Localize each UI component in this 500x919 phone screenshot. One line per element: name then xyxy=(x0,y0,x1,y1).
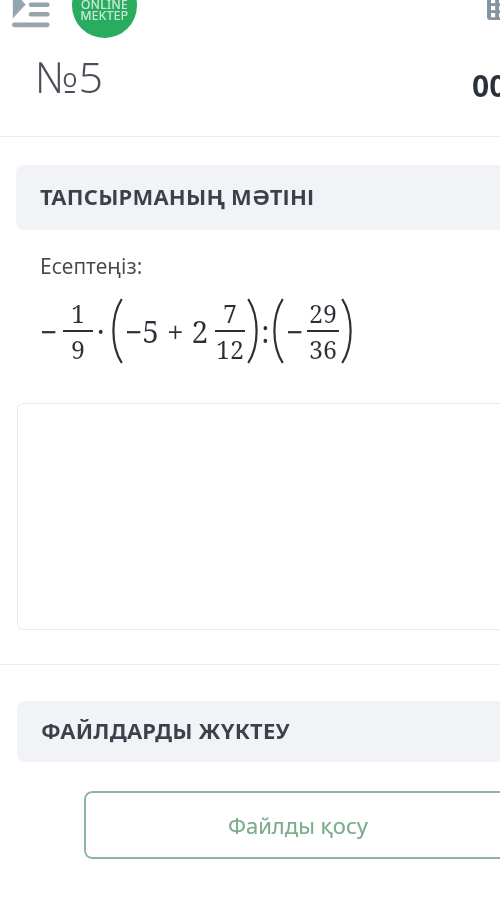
staticText: ФАЙЛДАРДЫ ЖҮКТЕУ xyxy=(41,715,290,745)
staticText: ONLINE xyxy=(72,0,137,12)
staticText: : xyxy=(261,311,270,352)
staticText: MEKTEP xyxy=(72,7,137,23)
staticText: Файлды қосу xyxy=(228,810,368,840)
button[interactable]: ФАЙЛДАРДЫ ЖҮКТЕУ xyxy=(17,701,500,762)
button[interactable]: ТАПСЫРМАНЫҢ МӘТІНІ xyxy=(16,165,500,230)
staticText: Есептеңіз: xyxy=(40,252,143,281)
staticText: 00:00 xyxy=(472,65,500,106)
staticText: 12 xyxy=(216,332,244,366)
staticText: −5 + 2 xyxy=(125,311,209,352)
staticText: 1 xyxy=(71,296,85,330)
staticText: · xyxy=(97,311,105,352)
button[interactable]: Online Mektep logo xyxy=(72,0,137,38)
staticText: − xyxy=(286,311,304,352)
staticText: ТАПСЫРМАНЫҢ МӘТІНІ xyxy=(40,181,315,211)
button[interactable]: Menu xyxy=(4,0,56,36)
button[interactable]: Calculator xyxy=(487,0,500,20)
staticText: 7 xyxy=(223,296,237,330)
staticText: №5 xyxy=(35,47,104,106)
button[interactable]: Файлды қосу xyxy=(84,791,500,859)
staticText: 29 xyxy=(309,296,337,330)
staticText: 9 xyxy=(71,332,85,366)
staticText: − xyxy=(40,311,58,352)
staticText: 36 xyxy=(309,332,337,366)
